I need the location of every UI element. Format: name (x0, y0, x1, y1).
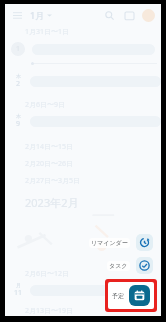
button[interactable]: タスク (107, 257, 153, 274)
staticText: 2023年2月 (25, 195, 79, 210)
staticText: タスク (109, 262, 128, 270)
staticText: 2月27日〜3月5日 (25, 176, 81, 186)
staticText: リマインダー (91, 239, 128, 247)
staticText: 1月 (30, 9, 45, 21)
staticText: 2 (16, 79, 21, 89)
staticText: 2月6日〜12日 (25, 269, 70, 279)
staticText: 予定 (112, 292, 124, 300)
staticText: 木 (16, 73, 21, 79)
button[interactable]: Account (142, 9, 155, 22)
button[interactable]: リマインダー (89, 234, 153, 251)
button[interactable]: Search (102, 8, 116, 22)
button[interactable]: 予定 (112, 285, 150, 306)
staticText: 9 (16, 119, 21, 129)
staticText: 2月14日〜15日 (25, 142, 74, 152)
button[interactable]: Menu (11, 9, 24, 22)
staticText: 2月13日〜19日 (25, 306, 74, 316)
staticText: 2月6日〜9日 (25, 100, 66, 110)
other: Task (139, 260, 150, 271)
staticText: 2月20日〜26日 (25, 159, 74, 169)
staticText: 1月31日〜1日 (25, 27, 70, 37)
other: Reminder (139, 237, 150, 248)
staticText: 11 (14, 288, 23, 298)
button[interactable]: Change view (122, 8, 136, 22)
other: New event (134, 290, 145, 301)
staticText: 1 (16, 44, 21, 54)
staticText: 月 (16, 282, 21, 288)
staticText: 木 (16, 113, 21, 119)
button[interactable] (30, 285, 111, 296)
